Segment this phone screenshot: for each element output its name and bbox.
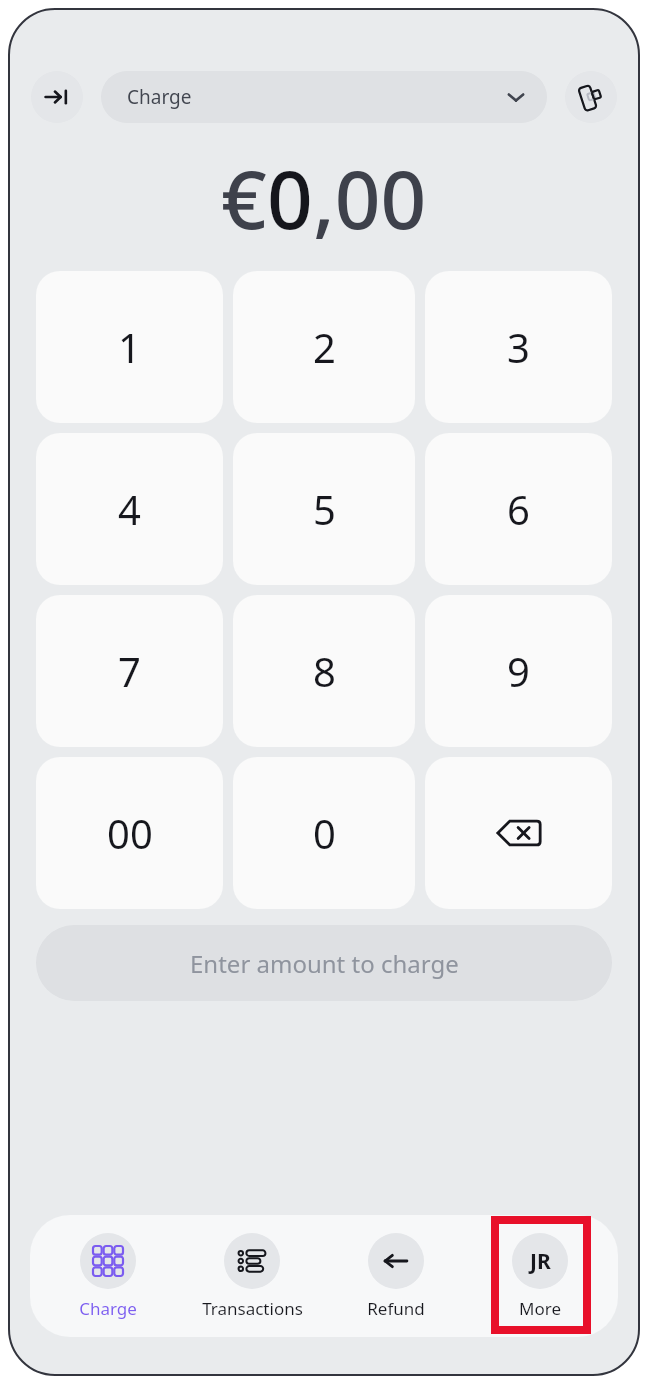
- button[interactable]: Refund: [330, 1229, 462, 1324]
- staticText: Enter amount to charge: [190, 947, 459, 980]
- staticText: 0: [313, 806, 336, 860]
- staticText: More: [519, 1297, 561, 1320]
- button[interactable]: Transactions: [186, 1229, 318, 1324]
- button[interactable]: JR: [474, 1229, 606, 1324]
- staticText: 00: [107, 806, 153, 860]
- button[interactable]: 8: [233, 595, 415, 747]
- button[interactable]: 6: [425, 433, 612, 585]
- button[interactable]: Charge: [101, 71, 547, 123]
- button[interactable]: 7: [36, 595, 223, 747]
- staticText: 9: [507, 644, 530, 698]
- staticText: Charge: [127, 84, 192, 110]
- button[interactable]: 9: [425, 595, 612, 747]
- staticText: €: [221, 143, 267, 252]
- staticText: 2: [313, 320, 336, 374]
- button[interactable]: 4: [36, 433, 223, 585]
- button[interactable]: Backspace: [425, 757, 612, 909]
- staticText: 8: [313, 644, 336, 698]
- button[interactable]: 5: [233, 433, 415, 585]
- button[interactable]: 2: [233, 271, 415, 423]
- staticText: 0: [267, 143, 313, 252]
- staticText: 4: [118, 482, 141, 536]
- button[interactable]: Enter amount to charge: [36, 925, 612, 1001]
- staticText: 7: [118, 644, 141, 698]
- staticText: 3: [507, 320, 530, 374]
- staticText: Refund: [367, 1297, 425, 1320]
- staticText: 6: [507, 482, 530, 536]
- button[interactable]: 3: [425, 271, 612, 423]
- button[interactable]: Tap to pay: [565, 71, 617, 123]
- staticText: 5: [313, 482, 336, 536]
- button[interactable]: 1: [36, 271, 223, 423]
- staticText: ,00: [313, 143, 427, 252]
- button[interactable]: 00: [36, 757, 223, 909]
- button[interactable]: 0: [233, 757, 415, 909]
- button[interactable]: Charge: [42, 1229, 174, 1324]
- staticText: Transactions: [202, 1297, 303, 1320]
- button[interactable]: Exit: [31, 71, 83, 123]
- staticText: 1: [118, 320, 141, 374]
- staticText: Charge: [79, 1297, 137, 1320]
- staticText: JR: [530, 1247, 551, 1276]
